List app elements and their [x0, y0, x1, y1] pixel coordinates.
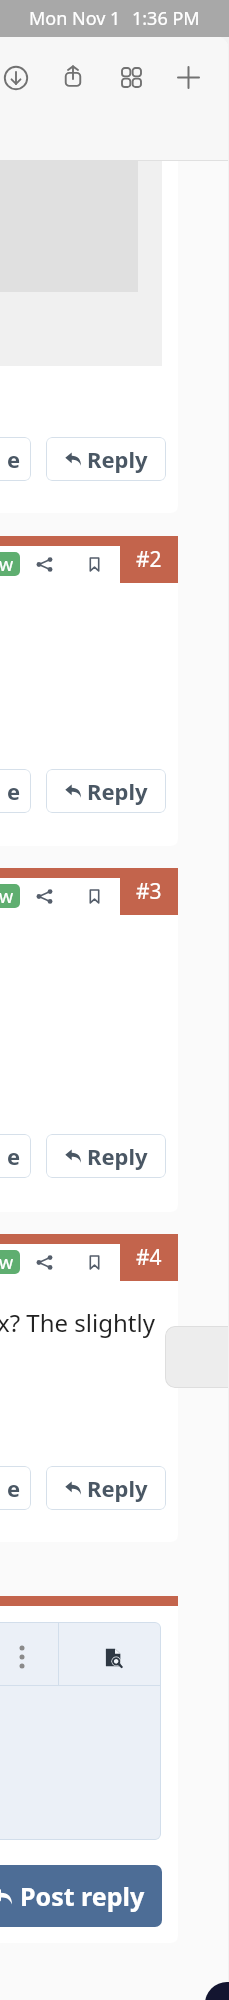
staticText: e	[7, 776, 21, 806]
button[interactable]: Share post	[33, 1251, 55, 1273]
button[interactable]: Downloads	[3, 65, 29, 91]
button[interactable]: New tab	[175, 64, 201, 90]
button[interactable]: Tab overview	[119, 65, 143, 89]
button[interactable]: #4	[120, 1234, 178, 1281]
button[interactable]: Reply	[46, 1466, 166, 1510]
staticText: Reply	[87, 444, 148, 474]
button[interactable]: w	[0, 1250, 20, 1274]
staticText: Reply	[87, 776, 148, 806]
staticText: 1:36 PM	[132, 6, 200, 31]
staticText: Post reply	[20, 1879, 145, 1913]
staticText: #4	[136, 1243, 162, 1272]
button[interactable]: #2	[120, 536, 178, 583]
staticText: Reply	[87, 1141, 148, 1171]
button[interactable]: e	[0, 1466, 31, 1510]
button[interactable]: Share	[59, 62, 87, 90]
button[interactable]: Bookmark	[83, 553, 105, 575]
button[interactable]: e	[0, 437, 31, 481]
button[interactable]: Bookmark	[83, 1251, 105, 1273]
button[interactable]: Bookmark	[83, 885, 105, 907]
button[interactable]: Share post	[33, 885, 55, 907]
staticText: Reply	[87, 1473, 148, 1503]
button[interactable]: Share post	[33, 553, 55, 575]
button[interactable]: w	[0, 552, 20, 576]
staticText: #2	[136, 545, 162, 574]
button[interactable]: w	[0, 884, 20, 908]
button[interactable]: Preview	[102, 1646, 124, 1668]
button[interactable]: Reply	[46, 437, 166, 481]
button[interactable]: e	[0, 769, 31, 813]
button[interactable]: Post reply	[0, 1865, 162, 1927]
staticText: e	[7, 1473, 21, 1503]
staticText: w	[0, 884, 14, 908]
staticText: w	[0, 1250, 14, 1274]
staticText: e	[7, 1141, 21, 1171]
staticText: Mon Nov 1	[29, 6, 121, 31]
button[interactable]: Reply	[46, 769, 166, 813]
staticText: x? The slightly	[0, 1306, 155, 1339]
button[interactable]: More options	[11, 1646, 33, 1668]
button[interactable]: e	[0, 1134, 31, 1178]
staticText: w	[0, 552, 14, 576]
staticText: #3	[136, 877, 162, 906]
button[interactable]: #3	[120, 868, 178, 915]
button[interactable]: Reply	[46, 1134, 166, 1178]
staticText: e	[7, 444, 21, 474]
